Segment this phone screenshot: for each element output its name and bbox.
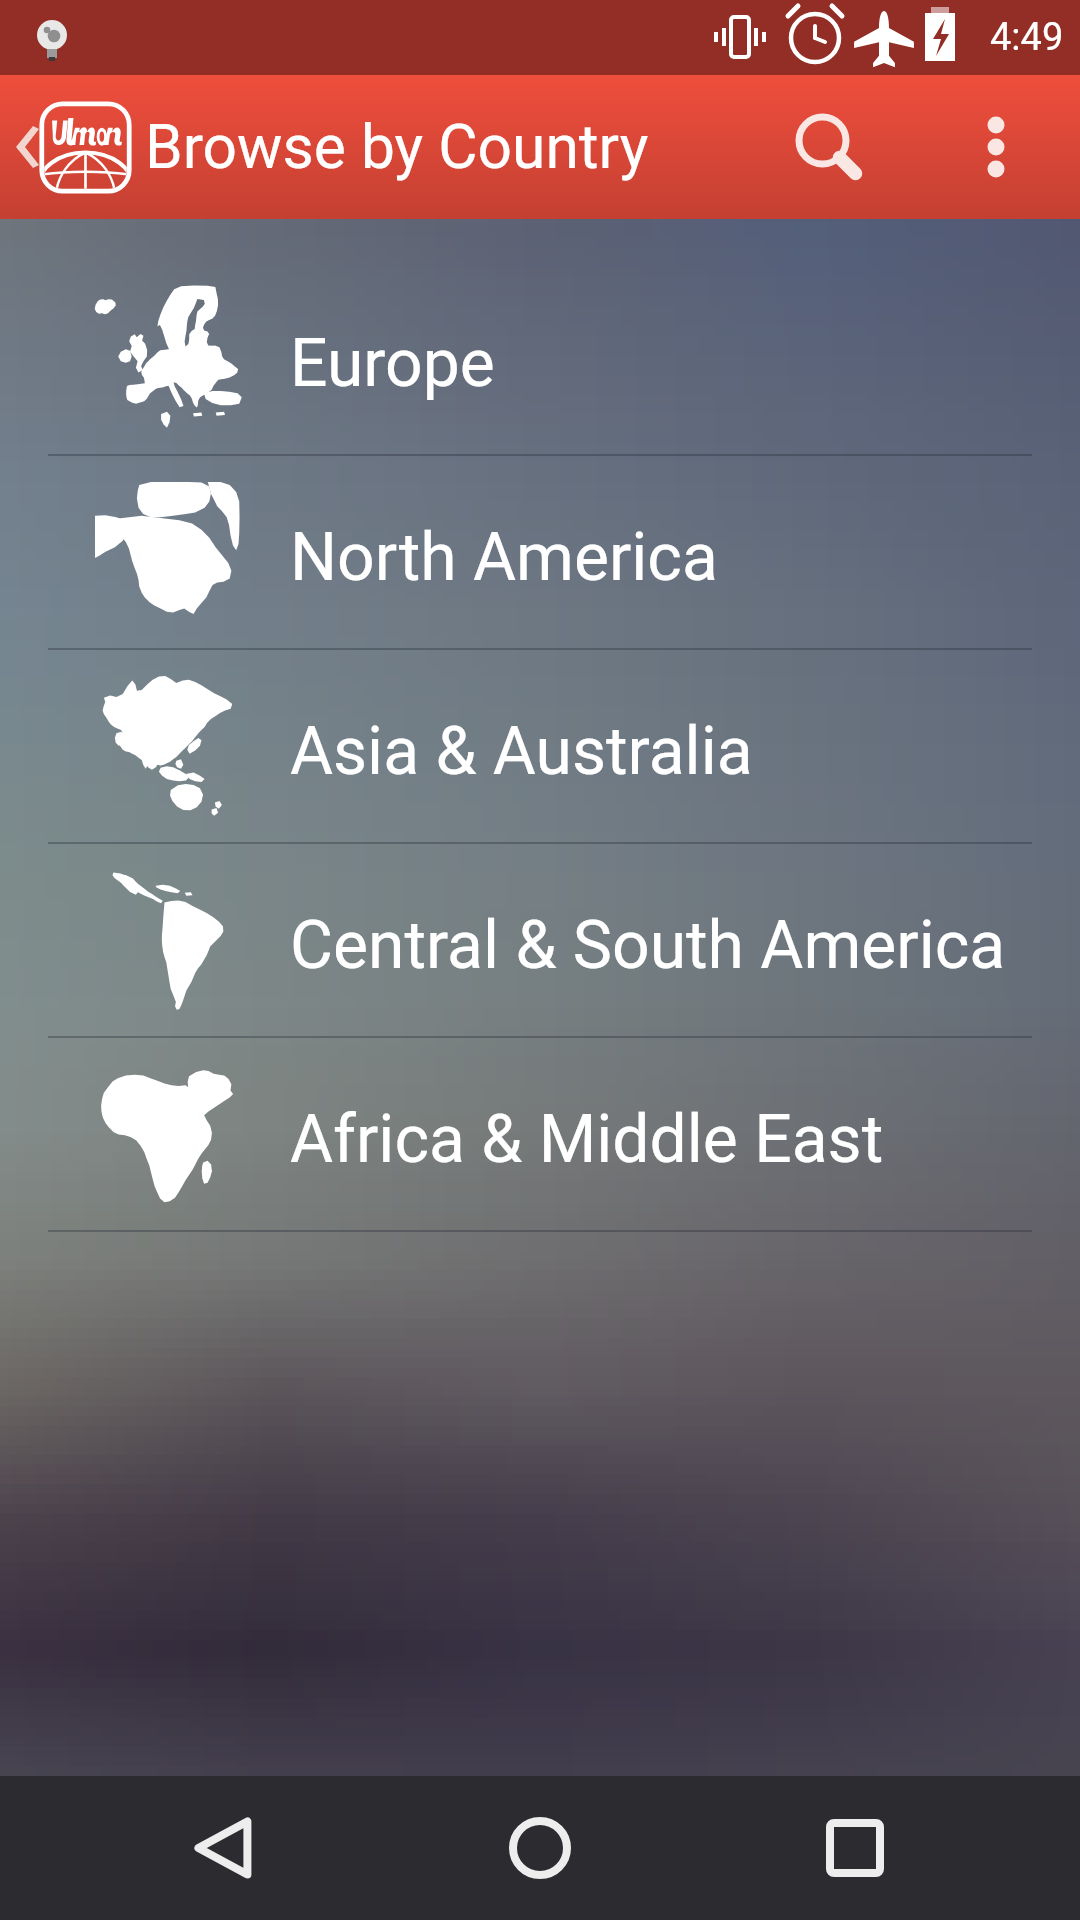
staticText: Central & South America: [290, 907, 1006, 984]
button[interactable]: Navigate up: [0, 75, 133, 219]
staticText: North America: [290, 519, 718, 596]
button[interactable]: Search: [746, 75, 912, 219]
button[interactable]: Africa & Middle East: [0, 1038, 1080, 1232]
staticText: 4:49: [990, 15, 1064, 60]
staticText: Africa & Middle East: [290, 1101, 884, 1178]
button[interactable]: Asia & Australia: [0, 650, 1080, 844]
staticText: Browse by Country: [145, 112, 649, 183]
button[interactable]: Recents: [765, 1776, 945, 1920]
button[interactable]: Back: [135, 1776, 315, 1920]
staticText: Europe: [290, 325, 495, 402]
button[interactable]: Central & South America: [0, 844, 1080, 1038]
button[interactable]: Home: [450, 1776, 630, 1920]
button[interactable]: More options: [912, 75, 1080, 219]
button[interactable]: Europe: [0, 262, 1080, 456]
staticText: Asia & Australia: [290, 713, 753, 790]
button[interactable]: North America: [0, 456, 1080, 650]
